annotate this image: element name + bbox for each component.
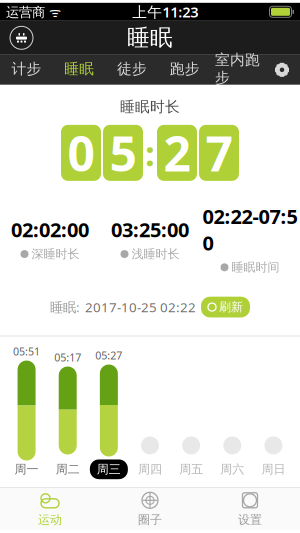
button[interactable]: Calendar (0, 21, 43, 55)
button[interactable]: 周一 (8, 459, 46, 479)
staticText: 运动 (38, 512, 62, 527)
staticText: 0 (67, 121, 94, 185)
staticText: 计步 (11, 60, 41, 78)
staticText: 徒步 (117, 60, 147, 78)
button[interactable]: 睡眠 (53, 55, 106, 85)
staticText: 深睡时长 (31, 247, 79, 261)
staticText: 跑步 (170, 60, 200, 78)
button[interactable]: 刷新 (201, 297, 250, 317)
staticText: 浅睡时长 (131, 247, 179, 261)
staticText: 2017-10-25 02:22 (85, 298, 196, 316)
staticText: 刷新 (219, 300, 243, 314)
staticText: 运营商 ᯤ (6, 3, 61, 21)
staticText: 睡眠时长 (120, 98, 180, 116)
button[interactable]: Settings (264, 55, 300, 85)
staticText: 03:25:00 (111, 216, 189, 243)
staticText: 周六 (220, 462, 244, 477)
button[interactable]: 周六 (213, 459, 251, 479)
staticText: 7 (205, 121, 232, 185)
staticText: 周五 (179, 462, 203, 477)
staticText: 睡眠 (64, 60, 94, 78)
button[interactable]: 设置 (200, 488, 300, 530)
staticText: 5 (109, 121, 136, 185)
staticText: 周二 (56, 462, 80, 477)
staticText: 02:02:00 (11, 216, 89, 243)
button[interactable]: 室内跑步 (211, 55, 264, 85)
staticText: 上午11:23 (132, 2, 198, 22)
staticText: 周一 (15, 462, 39, 477)
staticText: 室内跑步 (215, 51, 260, 87)
staticText: 2 (163, 121, 190, 185)
button[interactable]: 周三 (90, 459, 128, 479)
staticText: 睡眠时间 (231, 260, 279, 275)
button[interactable]: 周五 (172, 459, 210, 479)
staticText: 05:17 (54, 350, 81, 365)
staticText: : (145, 130, 155, 176)
button[interactable]: 圈子 (100, 488, 200, 530)
button[interactable]: 计步 (0, 55, 53, 85)
staticText: 周日 (261, 462, 285, 477)
staticText: 周三 (97, 462, 121, 477)
staticText: 05:51 (13, 344, 40, 359)
button[interactable]: 周四 (131, 459, 169, 479)
button[interactable]: 徒步 (106, 55, 158, 85)
button[interactable]: 跑步 (158, 55, 211, 85)
staticText: 睡眠 (127, 24, 173, 52)
button[interactable]: 周二 (49, 459, 87, 479)
staticText: 05:27 (95, 348, 122, 363)
staticText: 02:22-07:50 (202, 203, 297, 256)
button[interactable]: 周日 (254, 459, 292, 479)
staticText: 周四 (138, 462, 162, 477)
staticText: 设置 (238, 512, 262, 527)
staticText: 圈子 (138, 512, 162, 527)
button[interactable]: 运动 (0, 488, 100, 530)
staticText: 睡眠: (50, 298, 80, 316)
